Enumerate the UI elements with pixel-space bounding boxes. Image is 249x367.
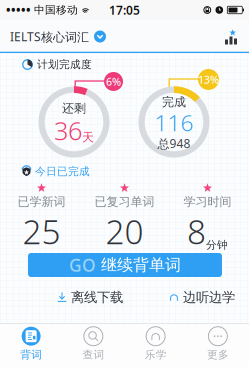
staticText: 中国移动 — [31, 3, 81, 16]
button[interactable]: Statistics — [225, 28, 238, 44]
staticText: 13% — [198, 72, 219, 87]
staticText: 今日已完成 — [35, 165, 90, 178]
button[interactable]: 查词 — [62, 323, 124, 367]
staticText: ••••• — [6, 2, 31, 18]
staticText: 更多 — [207, 348, 229, 361]
button[interactable]: 离线下载 — [57, 289, 123, 305]
staticText: 25 — [22, 209, 60, 253]
staticText: 8 — [187, 209, 206, 253]
staticText: 离线下载 — [71, 289, 123, 305]
staticText: 分钟 — [206, 238, 228, 251]
button[interactable]: IELTS核心词汇 — [10, 28, 106, 44]
staticText: 计划完成度 — [37, 58, 92, 71]
staticText: 继续背单词 — [101, 255, 181, 275]
staticText: IELTS核心词汇 — [10, 28, 89, 44]
button[interactable]: 乐学 — [124, 323, 187, 367]
staticText: 背词 — [20, 348, 42, 361]
staticText: 已复习单词 — [94, 194, 154, 209]
staticText: GO — [69, 253, 96, 276]
staticText: 20 — [105, 209, 143, 253]
staticText: 17:05 — [109, 2, 140, 18]
staticText: 还剩 — [62, 101, 86, 115]
staticText: 天 — [82, 130, 94, 145]
staticText: 6% — [106, 74, 121, 89]
staticText: 乐学 — [145, 348, 167, 361]
staticText: 已学新词 — [17, 194, 65, 209]
staticText: 总948 — [157, 135, 190, 151]
button[interactable]: 背词 — [0, 323, 62, 367]
button[interactable]: 边听边学 — [169, 289, 235, 305]
staticText: 边听边学 — [183, 289, 235, 305]
button[interactable]: GO — [28, 253, 222, 277]
staticText: 36 — [54, 113, 82, 147]
staticText: 116 — [154, 107, 193, 137]
staticText: 学习时间 — [183, 194, 231, 209]
staticText: 完成 — [162, 95, 186, 109]
button[interactable]: 更多 — [187, 323, 249, 367]
staticText: 查词 — [82, 348, 104, 361]
